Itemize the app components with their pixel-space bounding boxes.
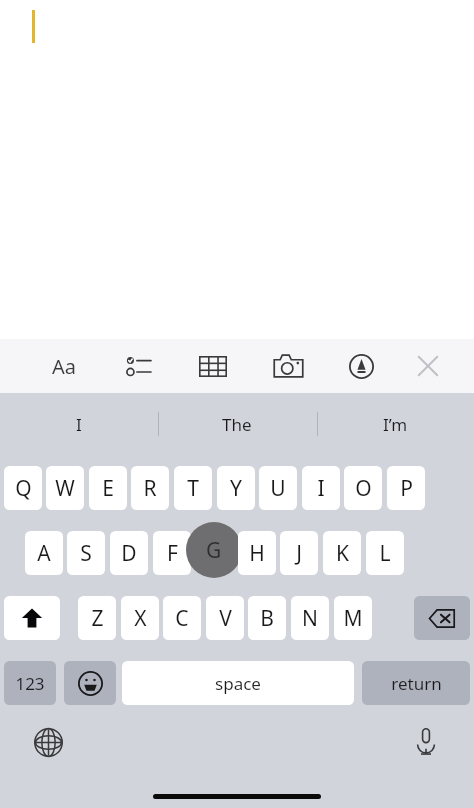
button[interactable]: Y: [217, 466, 255, 510]
staticText: The: [222, 413, 252, 436]
button[interactable]: Checklist: [115, 348, 163, 384]
button[interactable]: V: [206, 596, 244, 640]
staticText: P: [400, 474, 413, 503]
button[interactable]: Backspace: [414, 596, 470, 640]
button[interactable]: G: [186, 522, 242, 578]
button[interactable]: Z: [78, 596, 116, 640]
button[interactable]: S: [67, 531, 105, 575]
staticText: S: [80, 539, 92, 568]
button[interactable]: C: [163, 596, 201, 640]
button[interactable]: 123: [4, 661, 56, 705]
button[interactable]: H: [238, 531, 276, 575]
button[interactable]: The: [161, 401, 313, 447]
staticText: V: [219, 604, 232, 633]
button[interactable]: Switch keyboard: [26, 720, 70, 764]
button[interactable]: Text formatting: [40, 348, 88, 384]
button[interactable]: D: [110, 531, 148, 575]
button[interactable]: J: [280, 531, 318, 575]
button[interactable]: X: [121, 596, 159, 640]
staticText: return: [391, 672, 442, 695]
button[interactable]: Insert table: [189, 348, 237, 384]
staticText: R: [143, 474, 157, 503]
button[interactable]: Shift: [4, 596, 60, 640]
staticText: W: [55, 474, 75, 503]
button[interactable]: return: [362, 661, 470, 705]
button[interactable]: U: [259, 466, 297, 510]
button[interactable]: K: [323, 531, 361, 575]
staticText: M: [343, 604, 363, 633]
staticText: Y: [230, 474, 242, 503]
staticText: Q: [15, 474, 32, 503]
button[interactable]: T: [174, 466, 212, 510]
button[interactable]: B: [248, 596, 286, 640]
staticText: X: [134, 604, 147, 633]
staticText: F: [167, 539, 178, 568]
staticText: G: [206, 536, 222, 565]
button[interactable]: W: [46, 466, 84, 510]
button[interactable]: A: [25, 531, 63, 575]
staticText: space: [215, 672, 261, 695]
button[interactable]: M: [334, 596, 372, 640]
button[interactable]: Camera: [264, 348, 312, 384]
staticText: E: [102, 474, 114, 503]
button[interactable]: Markup: [337, 348, 385, 384]
staticText: L: [379, 539, 391, 568]
staticText: N: [302, 604, 318, 633]
staticText: O: [355, 474, 372, 503]
staticText: K: [336, 539, 349, 568]
button[interactable]: I: [302, 466, 340, 510]
button[interactable]: L: [366, 531, 404, 575]
staticText: I’m: [383, 413, 408, 436]
staticText: I: [76, 413, 82, 436]
staticText: B: [260, 604, 274, 633]
staticText: Z: [91, 604, 104, 633]
staticText: 123: [15, 672, 45, 695]
staticText: A: [37, 539, 51, 568]
button[interactable]: I’m: [319, 401, 471, 447]
button[interactable]: F: [153, 531, 191, 575]
button[interactable]: O: [344, 466, 382, 510]
staticText: U: [270, 474, 286, 503]
staticText: C: [175, 604, 189, 633]
button[interactable]: I: [3, 401, 155, 447]
staticText: H: [249, 539, 265, 568]
button[interactable]: space: [122, 661, 354, 705]
button[interactable]: Emoji: [64, 661, 116, 705]
button[interactable]: Q: [4, 466, 42, 510]
button[interactable]: Close: [406, 349, 450, 383]
staticText: T: [187, 474, 199, 503]
button[interactable]: Dictate: [404, 720, 448, 764]
staticText: Aa: [52, 353, 76, 380]
button[interactable]: P: [387, 466, 425, 510]
staticText: J: [296, 539, 302, 568]
button[interactable]: R: [131, 466, 169, 510]
staticText: D: [121, 539, 137, 568]
button[interactable]: E: [89, 466, 127, 510]
staticText: I: [317, 474, 325, 503]
button[interactable]: N: [291, 596, 329, 640]
